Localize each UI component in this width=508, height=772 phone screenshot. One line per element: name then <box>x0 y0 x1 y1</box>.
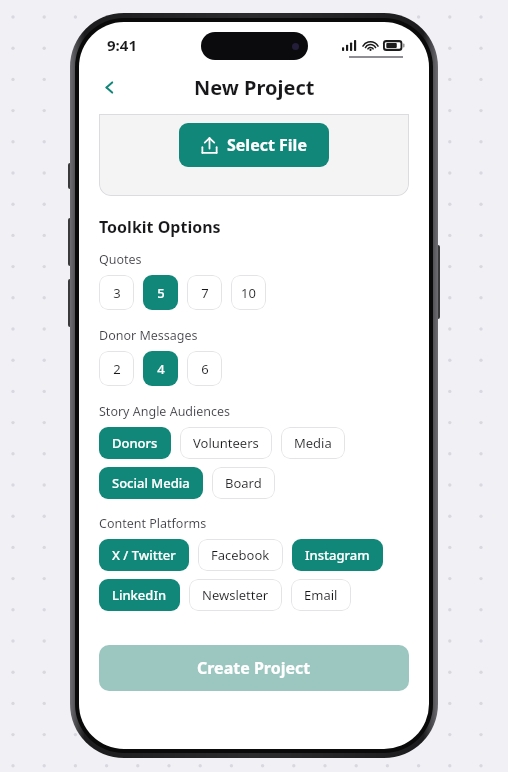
staticText: 7 <box>201 284 209 302</box>
staticText: Newsletter <box>202 586 269 604</box>
staticText: Media <box>294 434 332 452</box>
staticText: 6 <box>201 360 209 378</box>
staticText: X / Twitter <box>112 546 176 564</box>
staticText: Donor Messages <box>99 327 198 344</box>
button[interactable]: Volunteers <box>180 427 272 459</box>
staticText: Toolkit Options <box>99 216 221 238</box>
staticText: LinkedIn <box>112 586 167 604</box>
button[interactable]: Newsletter <box>189 579 282 611</box>
button[interactable]: Media <box>281 427 345 459</box>
staticText: Create Project <box>197 657 311 679</box>
button[interactable]: Board <box>212 467 275 499</box>
staticText: 3 <box>113 284 121 302</box>
staticText: Social Media <box>112 474 190 492</box>
button[interactable]: Donors <box>99 427 171 459</box>
staticText: Content Platforms <box>99 515 207 532</box>
staticText: 9:41 <box>107 35 137 55</box>
staticText: Story Angle Audiences <box>99 403 231 420</box>
staticText: 10 <box>241 284 256 302</box>
staticText: 4 <box>157 360 165 378</box>
button[interactable]: Email <box>291 579 351 611</box>
button[interactable]: LinkedIn <box>99 579 180 611</box>
staticText: 2 <box>113 360 121 378</box>
staticText: Donors <box>112 434 158 452</box>
button[interactable]: 6 <box>187 351 222 386</box>
button[interactable]: 7 <box>187 275 222 310</box>
staticText: Board <box>225 474 262 492</box>
staticText: Volunteers <box>193 434 259 452</box>
button[interactable]: 5 <box>143 275 178 310</box>
button[interactable]: 10 <box>231 275 266 310</box>
button[interactable]: 3 <box>99 275 134 310</box>
button[interactable]: 4 <box>143 351 178 386</box>
button[interactable]: Select File <box>179 123 329 167</box>
button[interactable]: Facebook <box>198 539 283 571</box>
button[interactable]: Create Project <box>99 645 409 691</box>
button[interactable]: Back <box>91 69 127 105</box>
button[interactable]: Social Media <box>99 467 203 499</box>
staticText: Facebook <box>211 546 270 564</box>
staticText: Email <box>304 586 338 604</box>
button[interactable]: 2 <box>99 351 134 386</box>
button[interactable]: Instagram <box>292 539 383 571</box>
staticText: Quotes <box>99 251 142 268</box>
staticText: New Project <box>194 74 315 101</box>
staticText: 5 <box>157 284 165 302</box>
staticText: Instagram <box>305 546 370 564</box>
button[interactable]: X / Twitter <box>99 539 189 571</box>
staticText: Select File <box>227 134 307 156</box>
